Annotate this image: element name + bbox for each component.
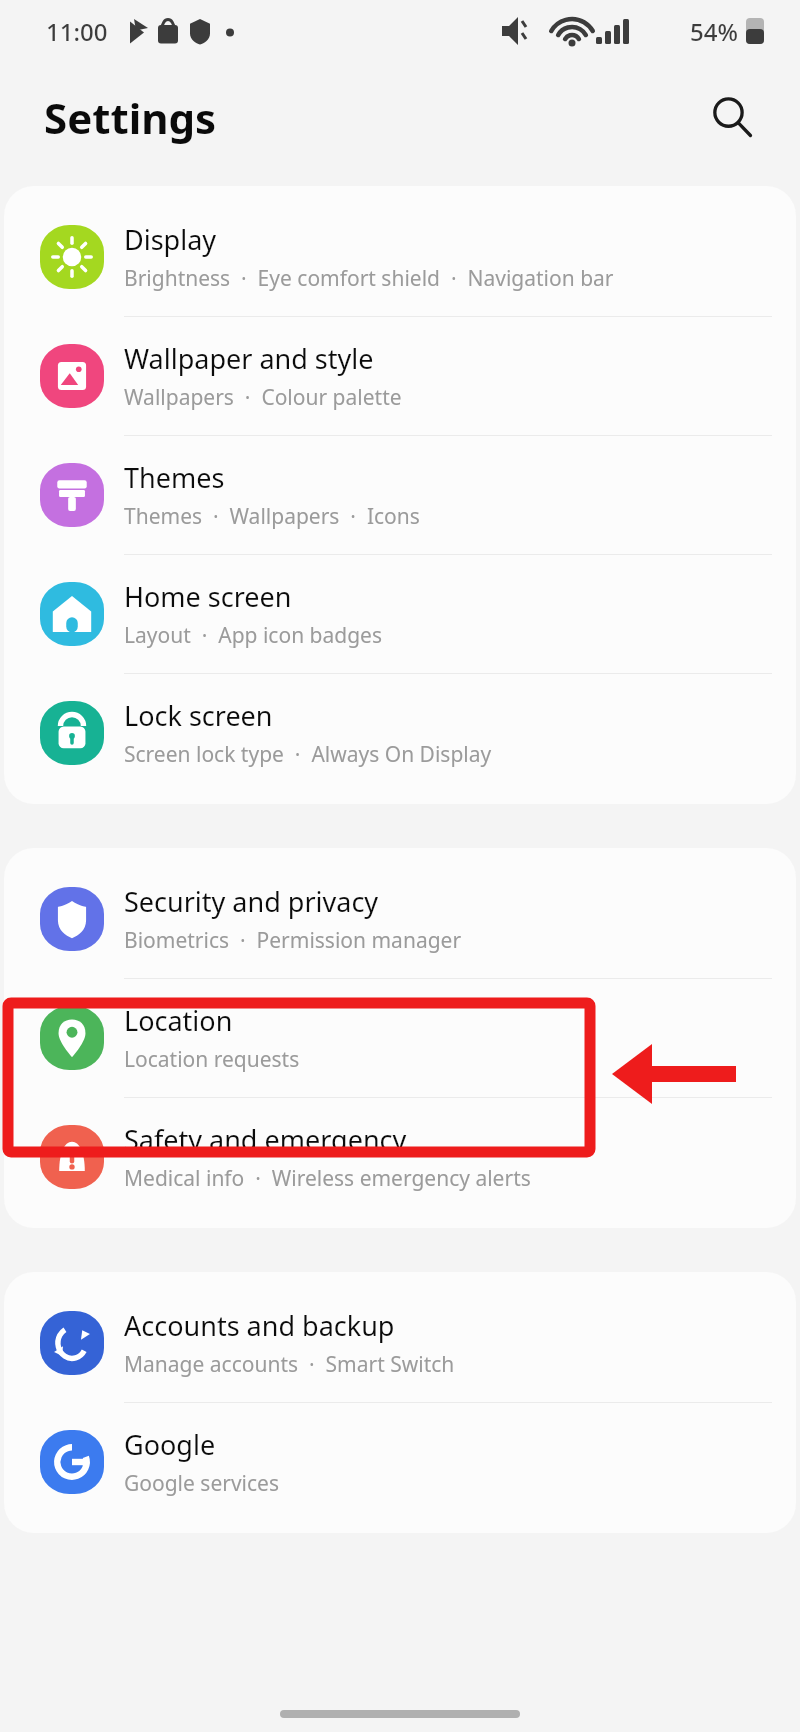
staticText: Settings xyxy=(44,89,217,146)
staticText: Screen lock type · Always On Display xyxy=(124,740,492,769)
staticText: 11:00 xyxy=(46,15,108,48)
staticText: Home screen xyxy=(124,578,292,615)
staticText: Themes xyxy=(124,459,225,496)
button[interactable]: Google xyxy=(4,1403,796,1521)
staticText: Display xyxy=(124,221,217,258)
staticText: 54% xyxy=(690,15,738,48)
staticText: Layout · App icon badges xyxy=(124,621,383,650)
staticText: Accounts and backup xyxy=(124,1307,395,1344)
button[interactable]: Lock screen xyxy=(4,674,796,792)
staticText: Wallpaper and style xyxy=(124,340,374,377)
button[interactable]: Display xyxy=(4,198,796,317)
staticText: Location requests xyxy=(124,1045,300,1074)
button[interactable]: Accounts and backup xyxy=(4,1284,796,1403)
staticText: Themes · Wallpapers · Icons xyxy=(124,502,420,531)
button[interactable]: Themes xyxy=(4,436,796,555)
staticText: Google services xyxy=(124,1469,279,1498)
button[interactable]: Wallpaper and style xyxy=(4,317,796,436)
button[interactable]: Security and privacy xyxy=(4,860,796,979)
staticText: Wallpapers · Colour palette xyxy=(124,383,402,412)
button[interactable]: Home screen xyxy=(4,555,796,674)
button[interactable]: Safety and emergency xyxy=(4,1098,796,1216)
staticText: Security and privacy xyxy=(124,883,379,920)
staticText: Location xyxy=(124,1002,233,1039)
staticText: Medical info · Wireless emergency alerts xyxy=(124,1164,531,1193)
button[interactable]: Search xyxy=(700,85,764,149)
staticText: Safety and emergency xyxy=(124,1121,407,1158)
staticText: Brightness · Eye comfort shield · Naviga… xyxy=(124,264,614,293)
button[interactable]: Location xyxy=(4,979,796,1098)
staticText: Biometrics · Permission manager xyxy=(124,926,462,955)
staticText: Google xyxy=(124,1426,216,1463)
staticText: Manage accounts · Smart Switch xyxy=(124,1350,455,1379)
staticText: Lock screen xyxy=(124,697,273,734)
